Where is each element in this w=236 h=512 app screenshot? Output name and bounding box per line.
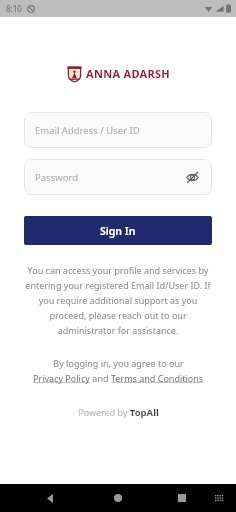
staticText: 8:10 [6, 3, 22, 14]
staticText: and [90, 372, 111, 384]
staticText: Password [35, 171, 78, 184]
staticText: Email Address / User ID [35, 124, 140, 137]
button[interactable]: Recent apps [172, 488, 192, 508]
button[interactable]: Privacy Policy [33, 372, 90, 384]
staticText: ANNA ADARSH [86, 66, 171, 81]
button[interactable]: Show password [183, 168, 201, 186]
staticText: Sign In [100, 224, 136, 238]
button[interactable]: Email Address / User ID [24, 112, 212, 148]
button[interactable]: Home [108, 488, 128, 508]
staticText: Powered by TopAll [78, 406, 159, 419]
button[interactable]: Terms and Conditions [111, 372, 204, 384]
staticText: You can access your profile and services… [25, 264, 211, 336]
staticText: Privacy Policy [33, 372, 90, 384]
button[interactable]: Sign In [24, 216, 212, 245]
button[interactable]: Password [24, 159, 212, 195]
button[interactable]: Keyboard [210, 489, 228, 507]
staticText: By logging in, you agree to our [53, 357, 184, 369]
button[interactable]: Back [40, 488, 60, 508]
staticText: Terms and Conditions [111, 372, 204, 384]
